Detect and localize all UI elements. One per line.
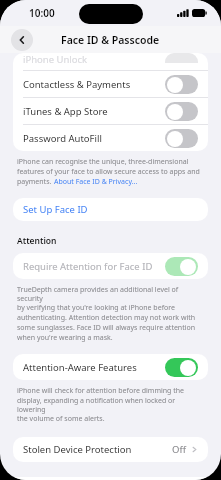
staticText: display, expanding a notification when l… [17,396,204,414]
staticText: by verifying that you're looking at iPho… [17,303,175,313]
staticText: iPhone will check for attention before d… [17,386,184,396]
staticText: 10:00 [29,6,55,20]
staticText: when you're wearing a mask. [17,333,113,343]
button[interactable] [165,257,198,276]
staticText: Require Attention for Face ID [23,260,165,273]
button[interactable]: About Face ID & Privacy... [54,177,138,187]
button[interactable]: Contactless & Payments [13,71,208,97]
button[interactable] [165,75,198,94]
staticText: Attention [17,235,57,247]
staticText: Contactless & Payments [23,78,165,91]
staticText: iPhone can recognise the unique, three-d… [17,157,189,167]
button[interactable] [165,358,198,377]
staticText: Face ID & Passcode [61,33,160,47]
button[interactable]: Attention-Aware Features [13,354,208,380]
button[interactable]: iPhone Unlock [13,53,208,70]
button[interactable]: Password AutoFill [13,125,208,151]
button[interactable]: Turn Passcode On [13,477,208,480]
staticText: Attention-Aware Features [23,361,165,374]
button[interactable]: Back [11,29,33,51]
button[interactable]: iTunes & App Store [13,98,208,124]
staticText: TrueDepth camera provides an additional … [17,285,204,303]
button[interactable]: Set Up Face ID [13,198,208,221]
button[interactable]: Require Attention for Face ID [13,253,208,279]
staticText: iTunes & App Store [23,105,165,118]
staticText: some sunglasses. Face ID will always req… [17,323,196,333]
staticText: Stolen Device Protection [23,443,172,456]
staticText: Set Up Face ID [23,203,88,216]
staticText: iPhone Unlock [23,53,165,66]
staticText: authenticating. Attention detection may … [17,313,196,323]
staticText: Password AutoFill [23,132,165,145]
staticText: the volume of some alerts. [17,414,105,424]
staticText: payments. [17,177,54,187]
staticText: features of your face to allow secure ac… [17,167,200,177]
button[interactable]: Stolen Device Protection [13,437,208,462]
button[interactable] [165,129,198,148]
staticText: Off [172,443,186,456]
button[interactable] [165,102,198,121]
